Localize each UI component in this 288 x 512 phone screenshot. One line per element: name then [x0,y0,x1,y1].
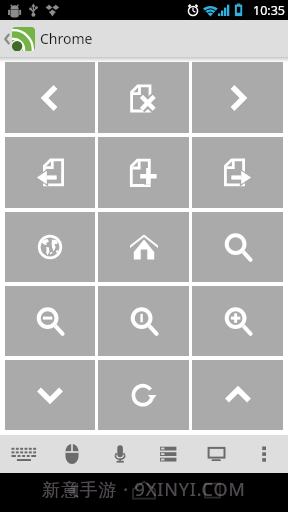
button[interactable]: Forward [192,62,283,133]
button[interactable]: Keyboard [0,435,48,473]
button[interactable]: Reload [98,360,189,430]
button[interactable]: Home [98,212,189,282]
button[interactable]: Mouse [48,435,96,473]
button[interactable]: Back [5,62,95,133]
button[interactable]: Actual size [98,286,189,356]
button[interactable]: New tab [98,137,189,208]
button[interactable]: Close tab [98,62,189,133]
button[interactable]: Voice [96,435,144,473]
button[interactable]: Zoom out [5,286,95,356]
button[interactable]: More options [240,435,288,473]
button[interactable]: Previous tab [5,137,95,208]
button[interactable]: Search [192,212,283,282]
button[interactable]: Chrome [0,20,93,57]
button[interactable]: Screen [192,435,240,473]
staticText: 新意手游 · 9XINYI.COM [42,477,246,502]
button[interactable]: Page up [192,360,283,430]
button[interactable]: Open page [5,212,95,282]
button[interactable]: Page down [5,360,95,430]
button[interactable]: Next tab [192,137,283,208]
button[interactable]: Zoom in [192,286,283,356]
staticText: Chrome [40,29,93,48]
staticText: 10:35 [253,2,285,19]
button[interactable]: List [144,435,192,473]
